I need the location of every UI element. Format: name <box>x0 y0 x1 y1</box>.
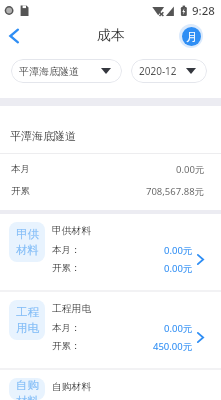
staticText: 0.00元 <box>164 322 193 335</box>
button[interactable]: Month picker <box>179 24 203 48</box>
staticText: 0.00元 <box>164 262 193 275</box>
staticText: 708,567.88元 <box>146 185 205 198</box>
staticText: 自购 材料 <box>16 378 39 400</box>
button[interactable]: 2020-12 <box>131 59 207 83</box>
staticText: 本月： <box>52 322 81 334</box>
staticText: 开累 <box>11 185 30 197</box>
staticText: 自购材料 <box>52 381 92 393</box>
button[interactable]: 工程 用电 <box>0 292 221 368</box>
staticText: 月 <box>186 30 197 44</box>
staticText: 本月： <box>52 244 81 256</box>
staticText: 450.00元 <box>153 340 193 353</box>
staticText: 甲供 材料 <box>16 227 39 257</box>
staticText: 甲供材料 <box>52 225 92 237</box>
staticText: 2020-12 <box>139 64 177 78</box>
staticText: 工程 用电 <box>16 305 39 335</box>
staticText: 开累： <box>52 262 81 274</box>
button[interactable]: Back <box>0 22 28 50</box>
staticText: 成本 <box>97 27 125 45</box>
button[interactable]: 平潭海底隧道 <box>11 59 122 83</box>
staticText: 工程用电 <box>52 303 92 315</box>
staticText: 0.00元 <box>176 163 205 176</box>
staticText: 9:28 <box>192 3 215 19</box>
staticText: 平潭海底隧道 <box>10 129 76 143</box>
staticText: 0.00元 <box>164 244 193 257</box>
button[interactable]: 自购 材料 <box>0 370 221 400</box>
button[interactable]: 甲供 材料 <box>0 214 221 290</box>
staticText: 本月 <box>11 163 30 175</box>
staticText: 平潭海底隧道 <box>19 65 79 78</box>
staticText: 开累： <box>52 340 81 352</box>
